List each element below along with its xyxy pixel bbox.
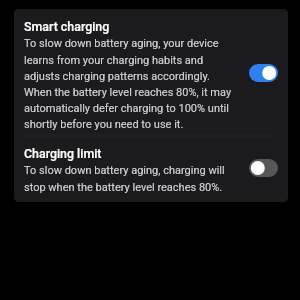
staticText: Charging limit	[24, 146, 102, 161]
button[interactable]: Charging limit switch	[249, 159, 278, 177]
button[interactable]: Smart charging switch	[249, 64, 278, 82]
button[interactable]: Charging limit	[14, 137, 288, 202]
staticText: To slow down battery aging, your device …	[24, 37, 232, 130]
staticText: To slow down battery aging, charging wil…	[24, 164, 225, 193]
staticText: Smart charging	[24, 19, 110, 34]
button[interactable]: Smart charging	[14, 9, 288, 133]
